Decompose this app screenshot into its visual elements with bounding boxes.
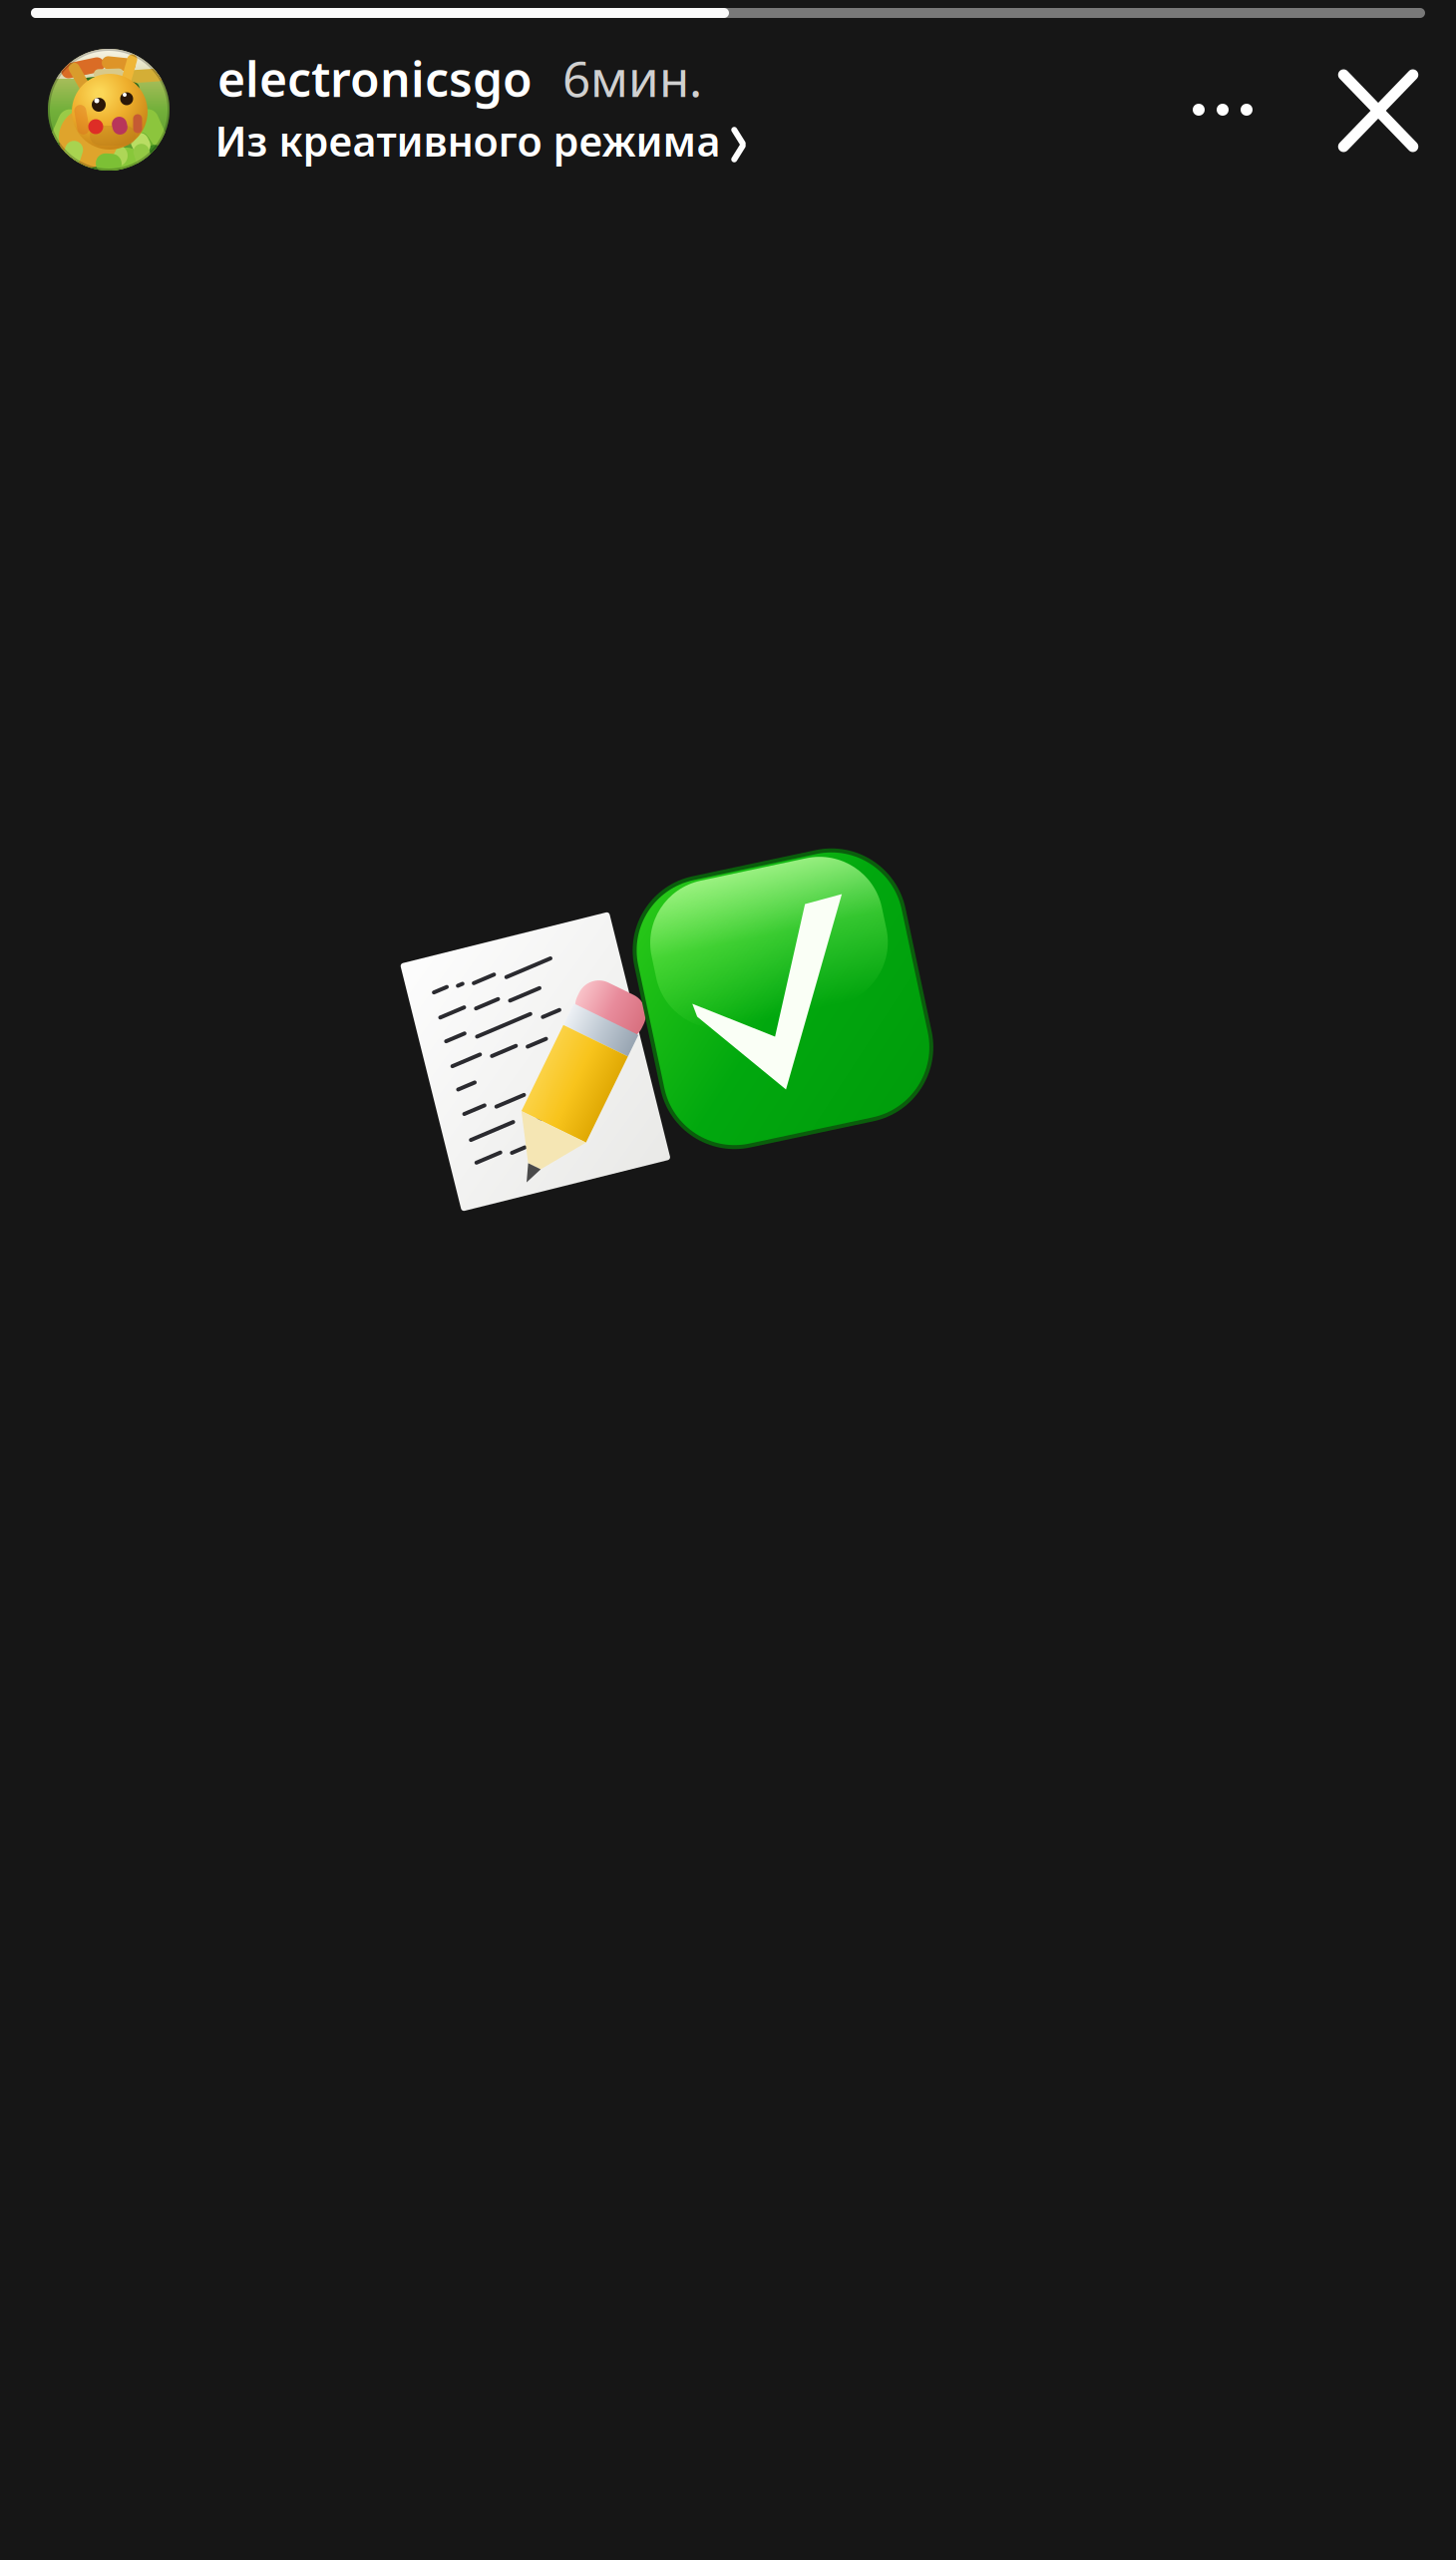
staticText: 6мин.: [562, 45, 702, 110]
button[interactable]: More options: [1167, 54, 1278, 166]
button[interactable]: electronicsgo profile: [48, 49, 170, 171]
button[interactable]: Из креативного режима: [215, 113, 746, 168]
staticText: Из креативного режима: [215, 113, 721, 168]
button[interactable]: Close: [1322, 55, 1434, 167]
staticText: electronicsgo: [217, 46, 533, 110]
button[interactable]: electronicsgo: [217, 45, 702, 110]
